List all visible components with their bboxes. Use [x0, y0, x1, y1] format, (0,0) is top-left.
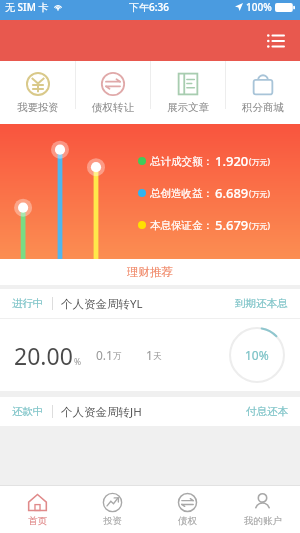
staticText: 付息还本	[246, 405, 288, 418]
staticText: 万	[113, 351, 122, 362]
staticText: 1.920	[215, 152, 249, 170]
staticText: 债权转让	[92, 101, 134, 114]
staticText: 无 SIM 卡	[5, 0, 49, 14]
staticText: 我要投资	[17, 101, 59, 114]
staticText: 积分商城	[242, 101, 284, 114]
staticText: 10%	[245, 347, 269, 363]
button[interactable]: 债权转让	[76, 61, 150, 124]
staticText: 首页	[28, 515, 47, 527]
staticText: 5.679	[215, 216, 249, 234]
staticText: (万元)	[249, 220, 270, 231]
staticText: (万元)	[249, 188, 270, 199]
staticText: 100%	[246, 0, 272, 14]
button[interactable]: 还款中	[0, 397, 300, 426]
staticText: 到期还本息	[235, 297, 288, 310]
staticText: 投资	[103, 515, 122, 527]
staticText: 理财推荐	[127, 265, 173, 279]
staticText: 个人资金周转JH	[61, 404, 142, 420]
staticText: 总计成交额：	[150, 155, 213, 168]
staticText: 天	[153, 351, 162, 362]
button[interactable]: 展示文章	[151, 61, 225, 124]
button[interactable]: 我的账户	[225, 486, 300, 533]
staticText: %	[74, 356, 82, 368]
staticText: 总创造收益：	[150, 187, 213, 200]
button[interactable]: 进行中	[0, 289, 300, 391]
staticText: 1	[146, 347, 153, 363]
button[interactable]: 债权	[150, 486, 225, 533]
staticText: 下午6:36	[129, 0, 169, 14]
staticText: 债权	[178, 515, 197, 527]
button[interactable]: 投资	[75, 486, 150, 533]
staticText: 6.689	[215, 184, 249, 202]
staticText: (万元)	[249, 156, 270, 167]
staticText: 20.00	[14, 340, 73, 371]
staticText: 进行中	[12, 297, 44, 310]
staticText: 我的账户	[244, 515, 282, 527]
button[interactable]: Menu	[260, 26, 290, 56]
staticText: 本息保证金：	[150, 219, 213, 232]
button[interactable]: 我要投资	[0, 61, 75, 124]
staticText: 展示文章	[167, 101, 209, 114]
button[interactable]: 首页	[0, 486, 75, 533]
staticText: 个人资金周转YL	[61, 296, 143, 312]
staticText: 0.1	[96, 347, 113, 363]
button[interactable]: 积分商城	[226, 61, 300, 124]
staticText: 还款中	[12, 405, 44, 418]
